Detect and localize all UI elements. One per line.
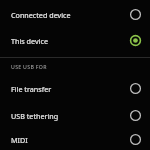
- button[interactable]: Connected device: [0, 2, 150, 27]
- button[interactable]: USB tethering: [0, 102, 150, 129]
- staticText: This device: [11, 36, 48, 46]
- staticText: File transfer: [11, 84, 52, 94]
- button[interactable]: This device: [0, 27, 150, 54]
- staticText: USE USB FOR: [11, 63, 47, 70]
- button[interactable]: MIDI: [0, 129, 150, 150]
- staticText: Connected device: [11, 10, 71, 20]
- staticText: MIDI: [11, 135, 28, 145]
- button[interactable]: File transfer: [0, 75, 150, 102]
- staticText: USB tethering: [11, 111, 59, 121]
